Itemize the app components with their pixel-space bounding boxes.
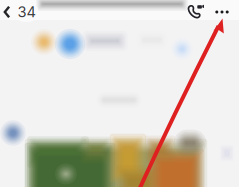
button[interactable]: More options [211, 2, 233, 21]
button[interactable]: Back, 34 unread [0, 0, 41, 25]
staticText: 34 [17, 3, 35, 21]
button[interactable]: Video call [183, 0, 209, 23]
